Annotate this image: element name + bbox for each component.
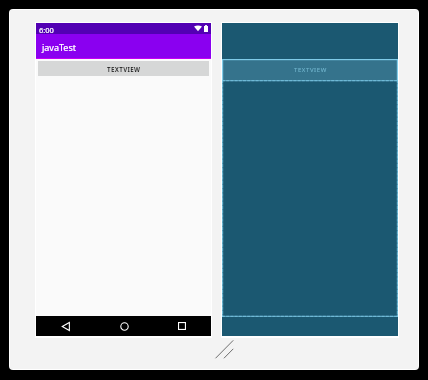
staticText: javaTest [42,41,77,53]
staticText: TEXTVIEW [107,65,141,73]
button[interactable]: TEXTVIEW [38,61,209,76]
button[interactable]: Home [95,316,153,336]
button[interactable]: TEXTVIEW [222,59,398,80]
button[interactable]: Recents [153,316,211,336]
staticText: 6:00 [39,25,54,34]
button[interactable]: Back [36,316,95,336]
staticText: TEXTVIEW [294,66,327,74]
